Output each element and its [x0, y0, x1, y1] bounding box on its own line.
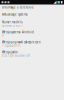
staticText: 4.4.146 builder #1 — [2, 54, 31, 57]
staticText: Informacje o telefonie — [2, 6, 34, 9]
staticText: Wersja poprawki zabezpieczen — [2, 40, 41, 44]
button[interactable]: Wersja systemu Android — [0, 28, 64, 38]
button[interactable]: Numer modelu — [0, 18, 64, 28]
button[interactable]: Wersja poprawki zabezpieczen — [0, 38, 64, 48]
button[interactable]: Wersja jadra — [0, 48, 64, 58]
staticText: Wersja systemu Android — [2, 30, 34, 34]
staticText: 9 — [2, 34, 4, 37]
staticText: 1 lipca 2019 — [2, 44, 20, 47]
staticText: Numer modelu — [2, 20, 23, 24]
staticText: Wersja jadra — [2, 50, 17, 54]
staticText: Aktualizacje systemu — [2, 13, 28, 16]
staticText: Lenovo L78011 — [2, 24, 24, 27]
